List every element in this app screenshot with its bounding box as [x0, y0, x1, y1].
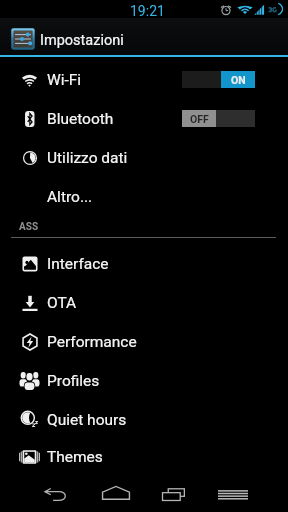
button[interactable]: ON: [182, 71, 255, 88]
staticText: Profiles: [47, 372, 100, 390]
button[interactable]: Home: [88, 474, 144, 512]
staticText: Themes: [47, 448, 103, 466]
button[interactable]: Interface: [0, 244, 288, 283]
staticText: Performance: [47, 333, 137, 351]
button[interactable]: Utilizzo dati: [0, 138, 288, 177]
button[interactable]: Wi-Fi: [0, 60, 288, 99]
button[interactable]: Performance: [0, 322, 288, 361]
button[interactable]: Quiet hours: [0, 400, 288, 439]
button[interactable]: OFF: [182, 110, 255, 127]
button[interactable]: Bluetooth: [0, 99, 288, 138]
staticText: 19:21: [130, 3, 165, 19]
button[interactable]: Profiles: [0, 361, 288, 400]
staticText: Bluetooth: [47, 110, 114, 128]
staticText: ASS: [19, 221, 39, 233]
button[interactable]: Themes: [0, 439, 288, 474]
staticText: OTA: [47, 294, 77, 312]
staticText: Utilizzo dati: [47, 149, 128, 167]
button[interactable]: Impostazioni: [0, 18, 288, 55]
staticText: Wi-Fi: [47, 71, 82, 89]
button[interactable]: OTA: [0, 283, 288, 322]
button[interactable]: Recent apps: [147, 474, 203, 512]
button[interactable]: Menu: [205, 474, 261, 512]
staticText: ON: [231, 74, 246, 86]
button[interactable]: Altro...: [0, 177, 288, 216]
button[interactable]: Back: [28, 474, 84, 512]
staticText: Interface: [47, 255, 109, 273]
staticText: Quiet hours: [47, 411, 127, 429]
staticText: Impostazioni: [40, 32, 124, 49]
staticText: Altro...: [47, 188, 93, 206]
staticText: OFF: [190, 113, 209, 125]
